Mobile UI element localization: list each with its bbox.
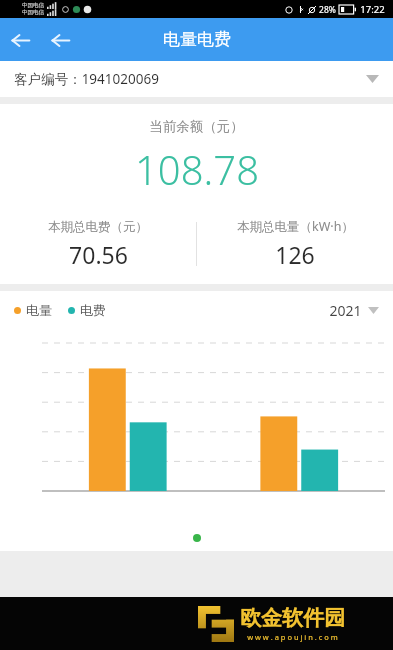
staticText: 中国电信	[22, 2, 44, 9]
button[interactable]: 客户编号：1941020069	[0, 61, 393, 97]
staticText: 电量电费	[163, 29, 231, 50]
staticText: 中国电信	[22, 9, 44, 16]
staticText: 108.78	[135, 142, 259, 196]
button[interactable]: 本期总电量（kW·h）	[197, 218, 393, 270]
staticText: 当前余额（元）	[149, 118, 244, 135]
staticText: 欧金软件园	[240, 605, 345, 631]
staticText: 本期总电量（kW·h）	[237, 218, 354, 235]
staticText: 28%	[319, 4, 336, 16]
staticText: 17:22	[360, 3, 385, 16]
staticText: w w w . a p o u j i n . c o m	[247, 632, 338, 642]
staticText: 70.56	[69, 239, 128, 270]
button[interactable]: Back	[0, 20, 40, 60]
staticText: 本期总电费（元）	[48, 219, 148, 235]
button[interactable]: 本期总电费（元）	[0, 219, 196, 270]
staticText: 电量	[26, 302, 52, 318]
staticText: 电费	[80, 302, 106, 318]
staticText: 126	[275, 239, 315, 270]
staticText: 客户编号：1941020069	[14, 70, 159, 88]
button[interactable]: Close	[40, 20, 80, 60]
button[interactable]: 2021	[329, 301, 379, 320]
staticText: 2021	[329, 301, 362, 320]
